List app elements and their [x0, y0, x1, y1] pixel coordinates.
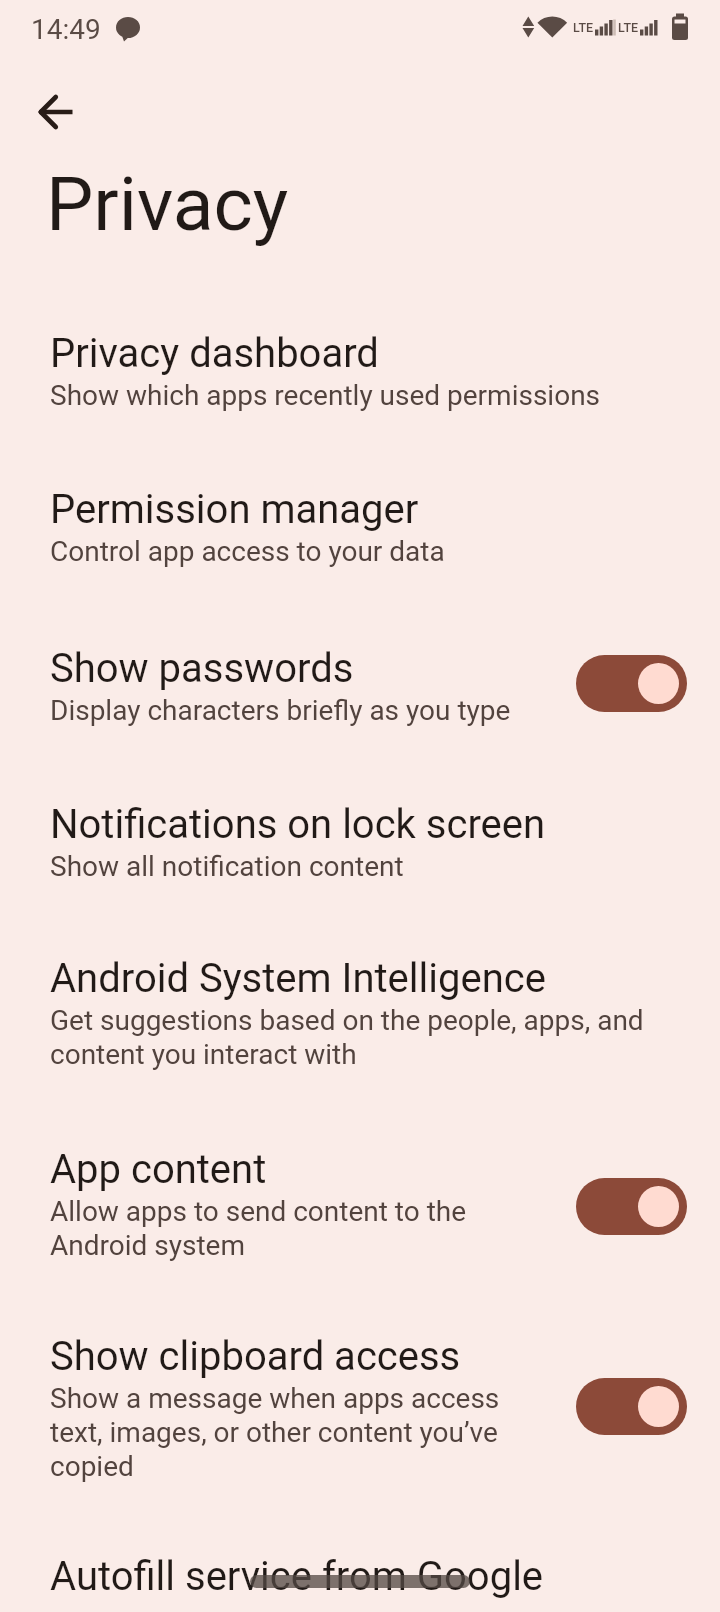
staticText: Show clipboard access — [50, 1333, 461, 1380]
button[interactable]: Show passwords — [0, 616, 720, 772]
staticText: LTE — [618, 20, 639, 35]
staticText: Control app access to your data — [50, 535, 445, 568]
button[interactable]: Android System Intelligence — [0, 926, 720, 1117]
button[interactable]: Notifications on lock screen — [0, 772, 720, 926]
button[interactable] — [32, 88, 80, 136]
staticText: App content — [50, 1146, 267, 1193]
staticText: Privacy — [46, 160, 289, 248]
button[interactable] — [576, 1178, 687, 1235]
staticText: Show which apps recently used permission… — [50, 379, 601, 412]
staticText: 14:49 — [31, 13, 101, 46]
staticText: Show all notification content — [50, 850, 404, 883]
staticText: Notifications on lock screen — [50, 801, 546, 848]
staticText: Get suggestions based on the people, app… — [50, 1004, 644, 1071]
button[interactable] — [576, 655, 687, 712]
staticText: Show passwords — [50, 645, 354, 692]
staticText: LTE — [573, 20, 594, 35]
button[interactable]: Show clipboard access — [0, 1304, 720, 1524]
staticText: Show a message when apps access text, im… — [50, 1382, 500, 1483]
button[interactable]: App content — [0, 1117, 720, 1304]
staticText: Privacy dashboard — [50, 330, 379, 377]
button[interactable]: Autofill service from Google — [0, 1524, 720, 1612]
button[interactable]: Privacy dashboard — [0, 301, 720, 457]
button[interactable]: Permission manager — [0, 457, 720, 616]
staticText: Autofill service from Google — [50, 1553, 544, 1600]
staticText: Android System Intelligence — [50, 955, 546, 1002]
button[interactable] — [576, 1378, 687, 1435]
staticText: Permission manager — [50, 486, 419, 533]
staticText: Display characters briefly as you type — [50, 694, 511, 727]
staticText: Allow apps to send content to the Androi… — [50, 1195, 467, 1262]
